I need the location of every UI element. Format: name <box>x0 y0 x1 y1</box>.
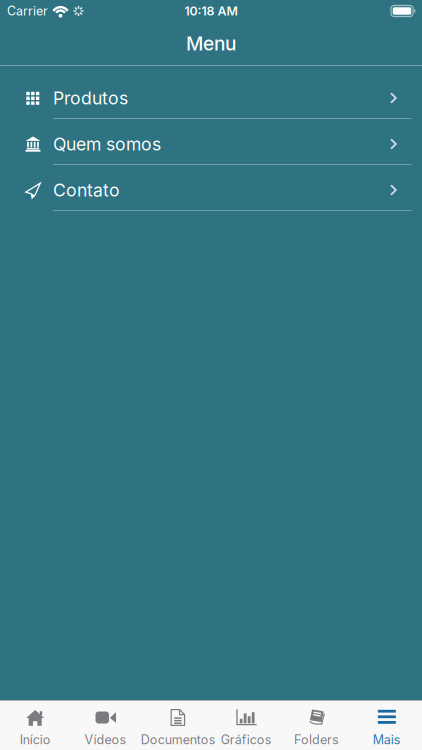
staticText: Folders <box>294 732 339 747</box>
button[interactable]: Contato <box>0 165 422 210</box>
staticText: Produtos <box>53 87 128 109</box>
staticText: Mais <box>373 732 401 747</box>
button[interactable]: Vídeos <box>70 701 141 750</box>
staticText: Vídeos <box>84 732 126 747</box>
button[interactable]: Quem somos <box>0 119 422 164</box>
staticText: Menu <box>186 32 236 55</box>
button[interactable]: Mais <box>352 701 422 750</box>
staticText: Início <box>20 732 51 747</box>
staticText: Quem somos <box>53 133 161 155</box>
button[interactable]: Documentos <box>141 701 211 750</box>
button[interactable]: Folders <box>281 701 352 750</box>
staticText: Gráficos <box>221 732 272 747</box>
staticText: Documentos <box>141 732 216 747</box>
button[interactable]: Produtos <box>0 73 422 118</box>
button[interactable]: Gráficos <box>211 701 281 750</box>
staticText: 10:18 AM <box>184 3 237 18</box>
staticText: Contato <box>53 179 120 201</box>
staticText: Carrier <box>7 3 48 18</box>
button[interactable]: Início <box>0 701 70 750</box>
